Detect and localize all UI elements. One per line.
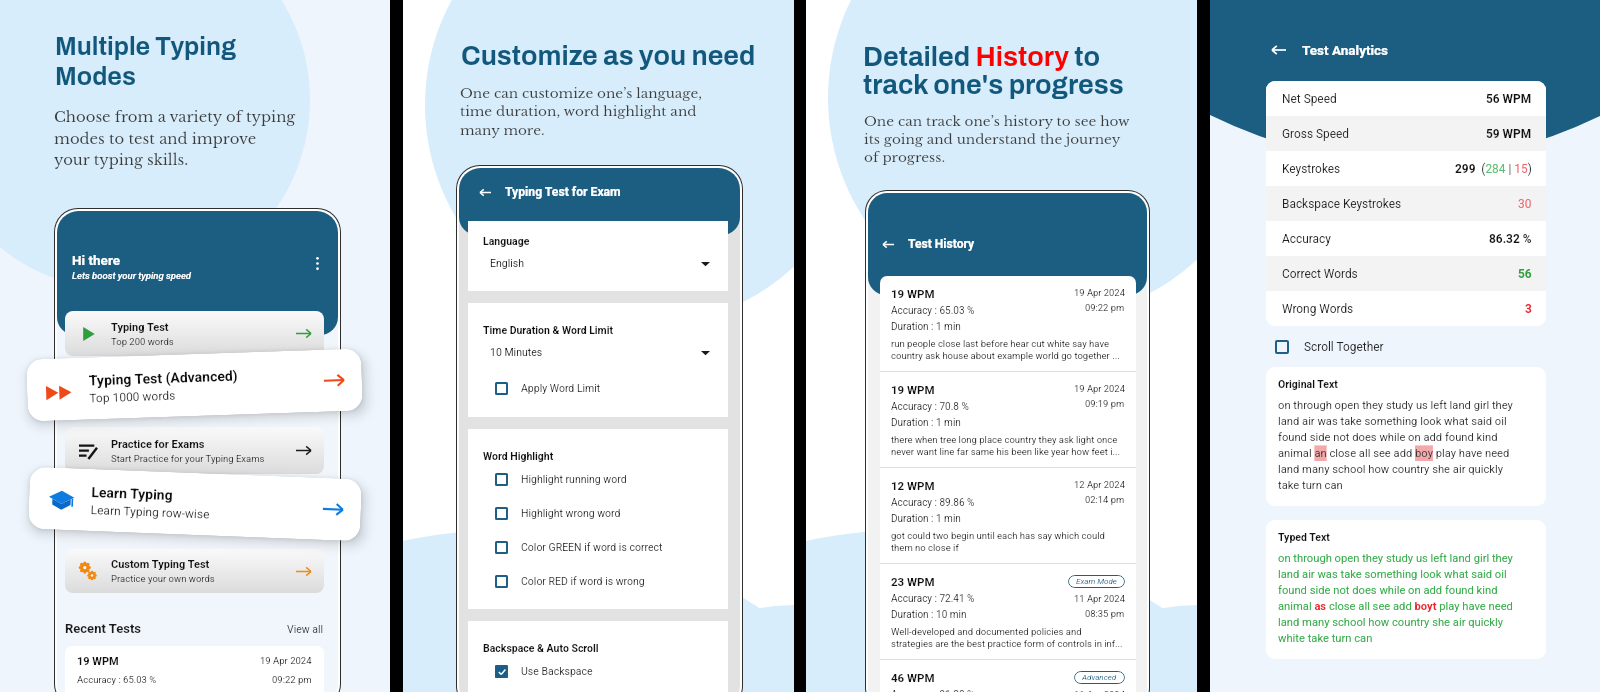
button[interactable]: Scroll Together xyxy=(1266,337,1393,357)
button[interactable]: Highlight running word xyxy=(483,462,716,496)
button[interactable]: Typing Test xyxy=(65,311,324,356)
staticText: Word Highlight xyxy=(483,450,554,462)
staticText: Hi there xyxy=(72,252,120,268)
staticText: Accuracy : 72.41 % xyxy=(891,593,975,605)
button[interactable]: Use Backspace xyxy=(483,654,716,688)
staticText: Highlight wrong word xyxy=(521,507,621,519)
button[interactable]: Practice for Exams xyxy=(65,427,324,474)
staticText: Accuracy : 91.20 % xyxy=(891,689,975,692)
button[interactable]: Back xyxy=(1272,43,1286,57)
button[interactable]: 23 WPM xyxy=(880,564,1136,659)
staticText: English xyxy=(490,257,524,269)
button[interactable]: Typing Test (Advanced) xyxy=(26,348,363,422)
staticText: 19 WPM xyxy=(77,655,119,668)
button[interactable]: 19 WPM xyxy=(880,276,1136,371)
staticText: Top 200 words xyxy=(111,336,174,347)
staticText: Well-developed and documented policies a… xyxy=(891,626,1123,649)
staticText: Accuracy : 65.03 % xyxy=(77,674,157,685)
staticText: Time Duration & Word Limit xyxy=(483,324,614,336)
staticText: View all xyxy=(287,623,324,635)
staticText: Use Backspace xyxy=(521,665,593,677)
staticText: One can track one’s history to see how i… xyxy=(864,113,1130,165)
staticText: 3 xyxy=(1525,302,1532,316)
staticText: Accuracy xyxy=(1282,232,1331,246)
staticText: 09:22 pm xyxy=(1085,302,1125,313)
button[interactable]: Custom Typing Test xyxy=(65,549,324,593)
staticText: run people close last before hear cut wh… xyxy=(891,338,1120,361)
button[interactable]: More options xyxy=(308,254,326,272)
button[interactable]: Backspace Keystrokes xyxy=(1266,186,1546,221)
staticText: One can customize one’s language, time d… xyxy=(460,85,702,139)
staticText: 30 xyxy=(1518,197,1532,211)
button[interactable]: Color RED if word is wrong xyxy=(483,564,716,598)
staticText: 12 Apr 2024 xyxy=(1074,479,1125,490)
button[interactable]: English xyxy=(483,247,716,279)
staticText: Practice for Exams xyxy=(111,438,205,451)
staticText: 19 WPM xyxy=(891,287,935,300)
staticText: Start Practice for your Typing Exams xyxy=(111,453,265,464)
staticText: Color GREEN if word is correct xyxy=(521,541,663,553)
staticText: 56 xyxy=(1518,267,1532,281)
staticText: Learn Typing row-wise xyxy=(90,503,210,522)
staticText: Backspace Keystrokes xyxy=(1282,197,1402,211)
staticText: Custom Typing Test xyxy=(111,558,210,571)
button[interactable]: 10 Minutes xyxy=(483,336,716,368)
staticText: Test Analytics xyxy=(1302,42,1389,58)
staticText: Test History xyxy=(908,237,975,251)
staticText: Multiple Typing Modes xyxy=(55,33,237,90)
button[interactable]: Accuracy xyxy=(1266,221,1546,256)
staticText: Original Text xyxy=(1278,378,1338,390)
button[interactable]: Gross Speed xyxy=(1266,116,1546,151)
staticText: Net Speed xyxy=(1282,92,1337,106)
button[interactable]: View all xyxy=(287,623,324,635)
staticText: 12 WPM xyxy=(891,479,935,492)
staticText: 299 (284 | 15) xyxy=(1455,162,1532,176)
staticText: 23 WPM xyxy=(891,575,935,588)
staticText: 86.32 % xyxy=(1489,232,1532,246)
staticText: 46 WPM xyxy=(891,671,935,684)
button[interactable]: Learn Typing xyxy=(28,467,362,541)
button[interactable]: Highlight wrong word xyxy=(483,496,716,530)
staticText: Typed Text xyxy=(1278,531,1330,543)
staticText: Learn Typing xyxy=(91,484,174,503)
staticText: got could two begin until each has say w… xyxy=(891,530,1105,553)
staticText: 02:14 pm xyxy=(1085,494,1125,505)
staticText: Correct Words xyxy=(1282,267,1358,281)
staticText: on through open they study us left land … xyxy=(1278,399,1513,492)
staticText: Scroll Together xyxy=(1304,340,1384,354)
staticText: Duration : 10 min xyxy=(891,609,967,621)
button[interactable]: Back xyxy=(883,239,894,250)
button[interactable]: Correct Words xyxy=(1266,256,1546,291)
staticText: Recent Tests xyxy=(65,621,141,636)
button[interactable]: 46 WPM xyxy=(880,660,1136,692)
staticText: Duration : 1 min xyxy=(891,321,961,333)
staticText: Highlight running word xyxy=(521,473,627,485)
staticText: 09:22 pm xyxy=(272,674,312,685)
staticText: 56 WPM xyxy=(1486,92,1532,106)
button[interactable]: Color GREEN if word is correct xyxy=(483,530,716,564)
staticText: Duration : 1 min xyxy=(891,417,961,429)
staticText: 19 Apr 2024 xyxy=(1074,287,1125,298)
staticText: Gross Speed xyxy=(1282,127,1350,141)
staticText: Detailed History to track one's progress xyxy=(863,42,1124,100)
staticText: 19 Apr 2024 xyxy=(260,655,312,666)
staticText: 59 WPM xyxy=(1486,127,1532,141)
button[interactable]: Wrong Words xyxy=(1266,291,1546,326)
staticText: 08:35 pm xyxy=(1085,608,1125,619)
button[interactable]: Keystrokes xyxy=(1266,151,1546,186)
staticText: 11 Apr 2024 xyxy=(1074,593,1125,604)
button[interactable]: Back xyxy=(480,187,491,198)
staticText: Typing Test for Exam xyxy=(505,185,621,199)
staticText: 19 Apr 2024 xyxy=(1074,383,1125,394)
button[interactable]: 12 WPM xyxy=(880,468,1136,563)
staticText: Advanced xyxy=(1082,673,1117,682)
staticText: Typing Test xyxy=(111,321,169,334)
staticText: Lets boost your typing speed xyxy=(72,270,192,281)
staticText: there when tree long place country they … xyxy=(891,434,1120,457)
button[interactable]: Net Speed xyxy=(1266,81,1546,116)
button[interactable]: 19 WPM xyxy=(880,372,1136,467)
staticText: Customize as you need xyxy=(461,41,756,70)
button[interactable]: Apply Word Limit xyxy=(483,371,716,405)
staticText: 11 Apr 2024 xyxy=(1074,689,1125,692)
staticText: Exam Mode xyxy=(1076,577,1117,586)
